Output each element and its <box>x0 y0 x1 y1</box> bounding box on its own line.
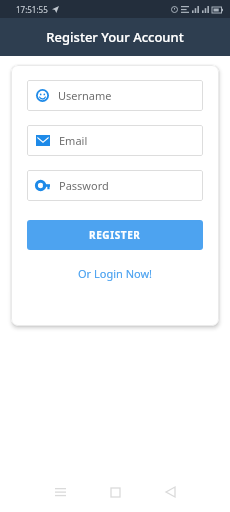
staticText: Username <box>58 88 112 103</box>
button[interactable]: Back <box>148 472 192 512</box>
button[interactable]: Or Login Now! <box>27 263 203 284</box>
staticText: Register Your Account <box>46 28 184 46</box>
button[interactable]: Email <box>27 125 203 156</box>
button[interactable]: Password <box>27 170 203 201</box>
button[interactable]: Home <box>93 472 137 512</box>
button[interactable]: Username <box>27 80 203 111</box>
staticText: 17:51:55 <box>16 4 48 15</box>
button[interactable]: REGISTER <box>27 220 203 250</box>
button[interactable]: Recent apps <box>38 472 82 512</box>
staticText: Or Login Now! <box>78 266 153 281</box>
staticText: Email <box>59 133 88 148</box>
staticText: Password <box>59 178 109 193</box>
staticText: REGISTER <box>89 228 141 242</box>
